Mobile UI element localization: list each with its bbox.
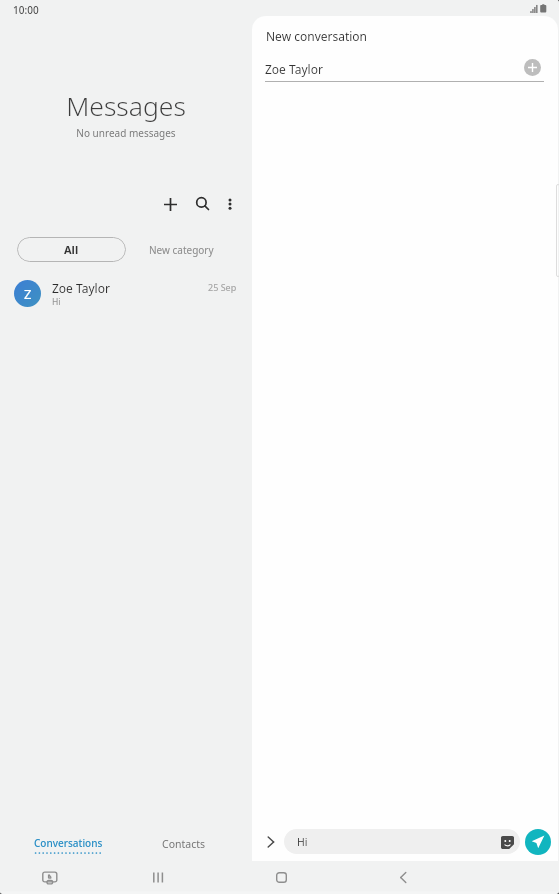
staticText: Zoe Taylor (52, 280, 110, 296)
button[interactable]: Back (387, 861, 420, 894)
staticText: 10:00 (13, 3, 39, 17)
staticText: Zoe Taylor (265, 61, 323, 77)
staticText: New conversation (266, 28, 368, 44)
button[interactable]: Stickers (500, 835, 514, 849)
staticText: New category (149, 243, 214, 257)
button[interactable]: Conversations (5, 825, 131, 864)
button[interactable]: Send (525, 829, 551, 855)
button[interactable]: Search (187, 188, 219, 220)
button[interactable]: Screenshot (33, 861, 66, 894)
staticText: Hi (297, 835, 308, 849)
button[interactable]: More options (214, 188, 246, 220)
button[interactable]: All (17, 237, 126, 262)
button[interactable]: Contacts (121, 824, 247, 863)
button[interactable]: Hi (284, 829, 520, 854)
staticText: Messages (0, 88, 252, 124)
staticText: 25 Sep (208, 281, 237, 293)
button[interactable]: Expand toolbar (254, 825, 287, 858)
button[interactable]: Add recipient (524, 59, 541, 76)
staticText: All (64, 242, 79, 257)
staticText: Hi (52, 296, 61, 308)
staticText: Conversations (34, 836, 103, 850)
staticText: Z (24, 285, 32, 303)
staticText: Contacts (162, 837, 206, 851)
button[interactable]: New conversation (154, 188, 186, 220)
button[interactable]: Home (265, 861, 298, 894)
button[interactable]: Z (0, 272, 252, 314)
button[interactable]: Recent apps (142, 861, 175, 894)
button[interactable]: New category (136, 237, 226, 263)
staticText: No unread messages (0, 126, 252, 140)
